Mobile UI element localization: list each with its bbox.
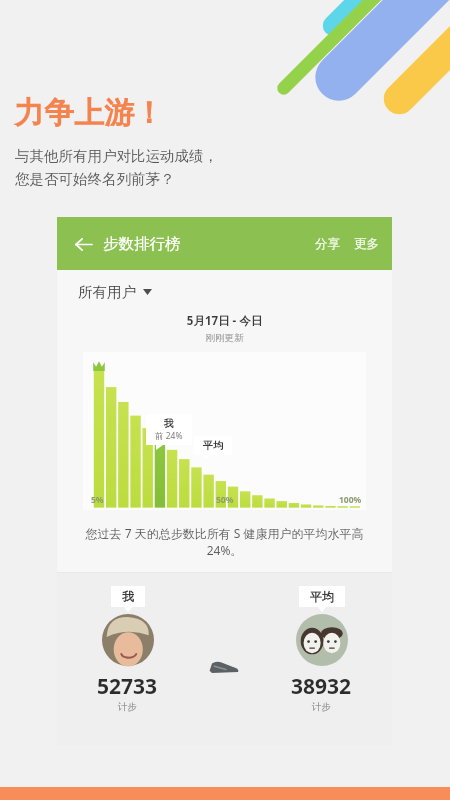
staticText: 平均 [310, 589, 334, 604]
button[interactable]: 所有用户 [57, 270, 392, 313]
staticText: 我 [164, 417, 174, 430]
button[interactable]: 平均 [291, 586, 352, 713]
staticText: 步数排行榜 [103, 234, 181, 254]
staticText: 您过去 7 天的总步数比所有 S 健康用户的平均水平高 24%。 [74, 525, 375, 558]
staticText: 计步 [312, 701, 331, 713]
staticText: 我 [122, 589, 134, 604]
staticText: 38932 [291, 672, 352, 701]
staticText: 52733 [97, 672, 158, 701]
staticText: 与其他所有用户对比运动成绩， [15, 147, 218, 165]
staticText: 分享 [315, 236, 340, 252]
staticText: 5月17日 - 今日 [57, 313, 392, 329]
staticText: 您是否可始终名列前茅？ [15, 170, 175, 188]
button[interactable]: Back [66, 227, 100, 261]
button[interactable]: 更多 [347, 230, 392, 258]
staticText: 5% [91, 494, 104, 506]
staticText: 计步 [118, 701, 137, 713]
staticText: 刚刚更新 [57, 332, 392, 344]
staticText: 50% [216, 494, 234, 506]
staticText: 平均 [203, 439, 223, 452]
staticText: 前 24% [155, 430, 183, 442]
button[interactable]: 分享 [308, 230, 347, 258]
staticText: 100% [339, 494, 362, 506]
staticText: 更多 [354, 236, 379, 252]
staticText: 力争上游！ [14, 94, 164, 132]
button[interactable]: 我 [97, 586, 158, 713]
staticText: 所有用户 [78, 283, 136, 301]
